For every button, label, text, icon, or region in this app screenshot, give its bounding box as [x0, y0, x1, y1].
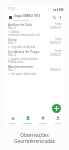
staticText: Observações: [20, 132, 49, 138]
staticText: Início: [9, 121, 16, 124]
button[interactable]: Monitoramento: [8, 63, 62, 75]
button[interactable]: Tarefas: [35, 116, 50, 124]
staticText: Teste: [55, 37, 62, 41]
staticText: Tarefas: [38, 121, 47, 124]
staticText: Georreferenciadas: [14, 138, 55, 144]
staticText: Perfil: [55, 121, 61, 124]
button[interactable]: Pesquisar: [51, 14, 57, 20]
staticText: Talhões: [23, 121, 32, 124]
staticText: Obs: 1: [8, 68, 50, 72]
button[interactable]: Perfil: [50, 116, 65, 124]
staticText: Teste: [55, 49, 62, 53]
button[interactable]: Início: [5, 116, 20, 124]
button[interactable]: Adicionar observacao: [52, 104, 61, 113]
staticText: Análise de Solo: [8, 22, 55, 27]
staticText: Obs: 2: [8, 26, 50, 30]
button[interactable]: Visita: [8, 36, 62, 48]
button[interactable]: Análise de Solo: [8, 21, 62, 36]
staticText: André Aymar: [14, 18, 29, 21]
staticText: Talhão Leste: [8, 60, 24, 64]
staticText: 30/04/21: [50, 68, 62, 72]
staticText: Monitoramento: [8, 64, 62, 69]
button[interactable]: Mais opcoes: [57, 14, 63, 20]
staticText: coleta de amostra de solo: [8, 33, 41, 37]
staticText: ferrugem detectada: [11, 72, 37, 76]
button[interactable]: Talhões: [20, 116, 35, 124]
staticText: lagarta na bordadura: [11, 57, 38, 61]
staticText: 01/05/21: [50, 53, 62, 57]
staticText: Sapo EMBU SP2: [14, 13, 41, 18]
button[interactable]: Menu: [7, 14, 13, 20]
button[interactable]: Incidência de Praga: [8, 48, 62, 63]
staticText: irrigação verificada: [11, 45, 36, 49]
staticText: Visita: [8, 37, 55, 42]
staticText: Incidência de Praga: [8, 49, 55, 54]
staticText: Obs: 4: [8, 53, 50, 57]
staticText: 17:12: [8, 7, 15, 11]
staticText: 02/05/21: [50, 41, 62, 45]
staticText: Talhão: [11, 30, 20, 34]
staticText: Obs: 1: [8, 41, 50, 45]
staticText: Teste: [55, 22, 62, 26]
staticText: 02/05/21: [50, 26, 62, 30]
